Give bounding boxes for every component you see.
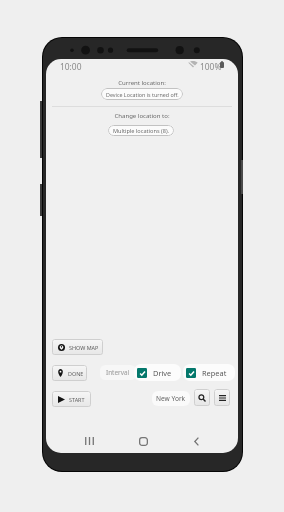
staticText: START (69, 396, 85, 403)
button[interactable]: Search (194, 389, 210, 406)
staticText: 10:00 (60, 61, 82, 72)
button[interactable]: Repeat (183, 364, 235, 381)
button[interactable]: Home (132, 430, 154, 452)
button[interactable]: SHOW MAP (52, 339, 103, 355)
staticText: SHOW MAP (69, 344, 99, 351)
button[interactable]: Menu (214, 389, 230, 406)
button[interactable]: DONE (52, 365, 87, 381)
button[interactable]: New York (152, 391, 190, 406)
button[interactable]: Back (185, 430, 207, 452)
staticText: Change location to: (46, 112, 238, 120)
button[interactable]: Multiple locations (8). (108, 125, 174, 136)
staticText: Repeat (202, 368, 227, 378)
staticText: Interval (106, 368, 130, 377)
button[interactable]: START (52, 391, 91, 407)
staticText: Device Location is turned off. (106, 91, 179, 98)
staticText: Multiple locations (8). (113, 127, 170, 135)
staticText: 100% (200, 61, 222, 72)
button[interactable]: Recent apps (78, 430, 100, 452)
button[interactable]: Drive (134, 364, 181, 381)
staticText: Drive (153, 368, 172, 378)
button[interactable]: Device Location is turned off. (101, 88, 183, 100)
staticText: DONE (68, 370, 84, 377)
button[interactable]: Interval (100, 365, 136, 380)
staticText: New York (156, 394, 186, 403)
staticText: Current location: (46, 79, 238, 87)
